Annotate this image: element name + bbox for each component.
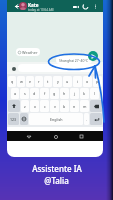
button[interactable]: i <box>73 76 82 87</box>
button[interactable]: a <box>11 88 19 99</box>
button[interactable]: English <box>29 113 83 125</box>
staticText: i <box>77 79 78 84</box>
button[interactable]: 123 <box>8 113 19 125</box>
staticText: Shanghai 27~40°C <box>59 58 89 63</box>
button[interactable]: Enter <box>90 113 102 125</box>
button[interactable] <box>18 64 100 72</box>
button[interactable]: Call <box>81 2 90 11</box>
button[interactable]: k <box>80 88 89 99</box>
staticText: @Talia <box>44 175 69 186</box>
button[interactable]: p <box>93 76 102 87</box>
button[interactable]: y <box>53 76 62 87</box>
staticText: o <box>86 79 89 84</box>
button[interactable]: Emoji <box>10 65 17 72</box>
button[interactable]: z <box>21 100 29 112</box>
button[interactable]: Shanghai 27~40°C <box>56 56 92 64</box>
button[interactable]: Change language <box>20 113 28 125</box>
staticText: c <box>44 104 46 109</box>
button[interactable]: u <box>63 76 72 87</box>
button[interactable]: o <box>83 76 92 87</box>
staticText: u <box>66 79 69 84</box>
staticText: x <box>34 104 36 109</box>
button[interactable]: x <box>30 100 39 112</box>
staticText: Kate <box>28 2 39 8</box>
staticText: p <box>96 79 99 84</box>
staticText: m <box>83 104 87 109</box>
staticText: d <box>33 91 36 96</box>
staticText: n <box>73 104 76 109</box>
button[interactable]: Weather <box>16 48 40 56</box>
staticText: h <box>63 91 66 96</box>
button[interactable]: q <box>8 76 16 87</box>
button[interactable]: v <box>50 100 59 112</box>
button[interactable]: Back <box>24 132 33 141</box>
button[interactable]: l <box>90 88 99 99</box>
staticText: z <box>24 104 26 109</box>
staticText: English <box>50 117 63 122</box>
button[interactable]: j <box>70 88 79 99</box>
button[interactable]: Shift <box>8 100 20 112</box>
button[interactable]: w <box>17 76 25 87</box>
button[interactable]: b <box>60 100 69 112</box>
button[interactable]: Send <box>88 51 98 61</box>
staticText: Assistente IA <box>32 163 82 174</box>
staticText: b <box>63 104 66 109</box>
staticText: t <box>47 79 49 84</box>
staticText: f <box>44 91 46 96</box>
button[interactable]: Video call <box>71 2 80 11</box>
button[interactable]: . <box>84 113 89 125</box>
button[interactable]: Recents <box>77 132 86 141</box>
button[interactable]: c <box>40 100 49 112</box>
staticText: 123 <box>10 117 17 122</box>
button[interactable]: r <box>35 76 43 87</box>
staticText: y <box>57 79 59 84</box>
button[interactable]: h <box>60 88 69 99</box>
staticText: j <box>74 91 75 96</box>
staticText: g <box>53 91 56 96</box>
button[interactable]: Backspace <box>90 100 102 112</box>
staticText: a <box>14 91 17 96</box>
staticText: Weather <box>22 50 38 55</box>
button[interactable]: Profile photo <box>19 2 27 10</box>
button[interactable]: f <box>40 88 49 99</box>
staticText: q <box>11 79 14 84</box>
staticText: today at 10:54 AM <box>28 8 54 12</box>
staticText: l <box>94 91 95 96</box>
staticText: v <box>54 104 56 109</box>
staticText: . <box>86 117 87 122</box>
staticText: s <box>24 91 26 96</box>
staticText: r <box>38 79 40 84</box>
staticText: w <box>20 79 23 84</box>
staticText: e <box>29 79 32 84</box>
button[interactable]: More options <box>91 2 99 10</box>
button[interactable]: Back <box>12 2 20 10</box>
button[interactable]: n <box>70 100 79 112</box>
button[interactable]: d <box>30 88 39 99</box>
button[interactable]: m <box>80 100 89 112</box>
button[interactable]: Home <box>51 132 60 141</box>
button[interactable]: t <box>44 76 52 87</box>
staticText: k <box>83 91 86 96</box>
button[interactable]: e <box>26 76 34 87</box>
button[interactable]: g <box>50 88 59 99</box>
button[interactable]: s <box>20 88 29 99</box>
